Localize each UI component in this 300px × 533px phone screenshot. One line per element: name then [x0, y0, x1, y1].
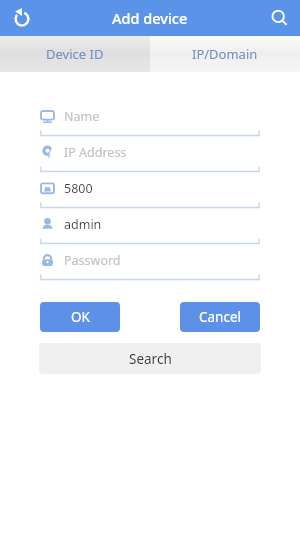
- button[interactable]: Search: [39, 343, 261, 374]
- button[interactable]: Name: [40, 101, 260, 137]
- staticText: Device ID: [46, 45, 104, 63]
- button[interactable]: Back: [4, 1, 38, 35]
- button[interactable]: Search: [262, 1, 296, 35]
- button[interactable]: Cancel: [180, 302, 260, 332]
- staticText: OK: [71, 308, 90, 326]
- button[interactable]: admin: [40, 209, 260, 245]
- button[interactable]: 5800: [40, 173, 260, 209]
- staticText: Search: [129, 350, 172, 368]
- button[interactable]: IP Address: [40, 137, 260, 173]
- staticText: admin: [64, 216, 102, 233]
- button[interactable]: IP/Domain: [150, 36, 300, 72]
- button[interactable]: Password: [40, 245, 260, 281]
- staticText: Name: [64, 108, 100, 125]
- staticText: Password: [64, 252, 121, 269]
- staticText: 5800: [64, 180, 93, 197]
- staticText: IP Address: [64, 144, 127, 161]
- staticText: Cancel: [199, 308, 242, 326]
- button[interactable]: OK: [40, 302, 120, 332]
- button[interactable]: Device ID: [0, 36, 150, 72]
- staticText: Add device: [112, 8, 188, 28]
- staticText: IP/Domain: [192, 45, 258, 63]
